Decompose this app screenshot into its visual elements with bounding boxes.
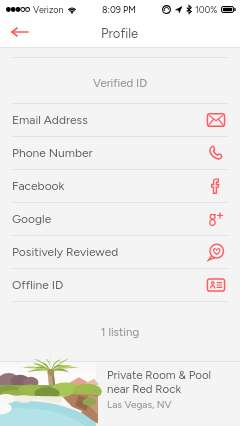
staticText: Las Vegas, NV — [107, 398, 172, 410]
staticText: Positively Reviewed — [12, 245, 119, 259]
button[interactable]: Back — [6, 19, 32, 45]
other: Phone verified — [207, 144, 225, 162]
staticText: Email Address — [12, 113, 88, 127]
staticText: Verizon — [33, 4, 64, 15]
staticText: Facebook — [12, 179, 65, 193]
other: Positively reviewed — [207, 243, 225, 261]
button[interactable]: Google — [0, 202, 240, 235]
other: Offline ID verified — [207, 276, 225, 294]
button[interactable]: Facebook — [0, 169, 240, 202]
other: Google verified — [207, 210, 225, 228]
button[interactable]: Positively Reviewed — [0, 235, 240, 268]
button[interactable]: Email Address — [0, 103, 240, 136]
staticText: near Red Rock — [107, 382, 182, 396]
other: Email verified — [207, 111, 225, 129]
staticText: Google — [12, 212, 52, 226]
button[interactable]: Private Room & Pool — [0, 362, 240, 426]
staticText: Verified ID — [0, 76, 240, 90]
staticText: Private Room & Pool — [107, 368, 212, 382]
staticText: Profile — [101, 26, 139, 42]
staticText: 100% — [195, 4, 218, 15]
other: Facebook verified — [207, 177, 225, 195]
staticText: Phone Number — [12, 146, 93, 160]
button[interactable]: Offline ID — [0, 268, 240, 301]
staticText: 8:09 PM — [102, 4, 136, 15]
staticText: 1 listing — [0, 325, 240, 339]
button[interactable]: Phone Number — [0, 136, 240, 169]
staticText: Offline ID — [12, 278, 64, 292]
